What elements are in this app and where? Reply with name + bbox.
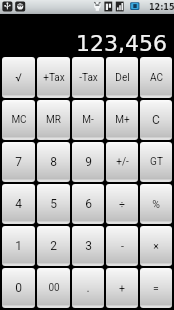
button[interactable]: 1 (2, 226, 35, 266)
staticText: 12:15 (149, 3, 174, 12)
button[interactable]: √ (2, 57, 35, 98)
staticText: 123,456 (76, 31, 167, 57)
button[interactable]: ÷ (106, 184, 138, 224)
button[interactable]: -Tax (72, 57, 104, 98)
button[interactable]: 9 (72, 142, 104, 182)
staticText: +/- (116, 156, 129, 168)
staticText: - (121, 240, 124, 252)
button[interactable]: % (140, 184, 172, 224)
staticText: 8 (50, 155, 57, 169)
staticText: 7 (15, 155, 22, 169)
button[interactable]: × (140, 226, 172, 266)
button[interactable]: 7 (2, 142, 35, 182)
staticText: 4 (15, 197, 22, 211)
staticText: √ (15, 71, 22, 84)
staticText: GT (150, 156, 163, 168)
button[interactable]: 3 (72, 226, 104, 266)
staticText: Del (115, 72, 130, 84)
staticText: -Tax (79, 72, 98, 84)
staticText: × (153, 240, 159, 252)
staticText: +Tax (43, 72, 65, 84)
button[interactable]: . (72, 268, 104, 308)
button[interactable]: + (106, 268, 138, 308)
button[interactable]: +/- (106, 142, 138, 182)
button[interactable]: 6 (72, 184, 104, 224)
staticText: AC (150, 72, 163, 84)
button[interactable]: AC (140, 57, 172, 98)
staticText: 2 (50, 239, 57, 253)
staticText: % (152, 198, 160, 210)
staticText: . (86, 281, 90, 295)
staticText: 00 (48, 282, 60, 294)
staticText: = (153, 282, 159, 294)
button[interactable]: 00 (37, 268, 70, 308)
staticText: MR (46, 114, 61, 126)
button[interactable]: GT (140, 142, 172, 182)
button[interactable]: C (140, 100, 172, 140)
staticText: 1 (15, 239, 22, 253)
button[interactable]: 5 (37, 184, 70, 224)
button[interactable]: 4 (2, 184, 35, 224)
button[interactable]: 0 (2, 268, 35, 308)
staticText: + (119, 282, 125, 294)
staticText: 0 (15, 281, 22, 295)
staticText: 5 (50, 197, 57, 211)
button[interactable]: MC (2, 100, 35, 140)
button[interactable]: = (140, 268, 172, 308)
button[interactable]: M- (72, 100, 104, 140)
button[interactable]: Del (106, 57, 138, 98)
staticText: ÷ (119, 198, 125, 210)
staticText: 3 (85, 239, 92, 253)
button[interactable]: M+ (106, 100, 138, 140)
staticText: 6 (85, 197, 92, 211)
staticText: M- (82, 114, 94, 126)
staticText: M+ (115, 114, 130, 126)
staticText: MC (11, 114, 27, 126)
button[interactable]: 2 (37, 226, 70, 266)
button[interactable]: 123,456 (0, 15, 174, 55)
button[interactable]: - (106, 226, 138, 266)
button[interactable]: 8 (37, 142, 70, 182)
button[interactable]: MR (37, 100, 70, 140)
button[interactable]: +Tax (37, 57, 70, 98)
staticText: C (152, 113, 160, 127)
staticText: 9 (85, 155, 92, 169)
